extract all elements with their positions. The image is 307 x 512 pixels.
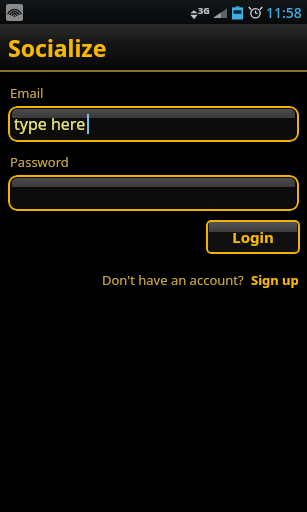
button[interactable]: Login [206, 220, 300, 254]
staticText: Login [232, 227, 274, 247]
button[interactable]: Sign up [251, 271, 299, 289]
button[interactable]: type here [8, 106, 299, 142]
staticText: Email [10, 84, 44, 102]
staticText: Don't have an account? [102, 271, 244, 289]
staticText: Sign up [251, 271, 299, 289]
staticText: Socialize [8, 32, 107, 63]
staticText: type here [14, 113, 86, 135]
staticText: 3G [198, 4, 210, 16]
button[interactable] [8, 175, 299, 211]
staticText: Password [10, 153, 69, 171]
staticText: 11:58 [266, 3, 302, 22]
